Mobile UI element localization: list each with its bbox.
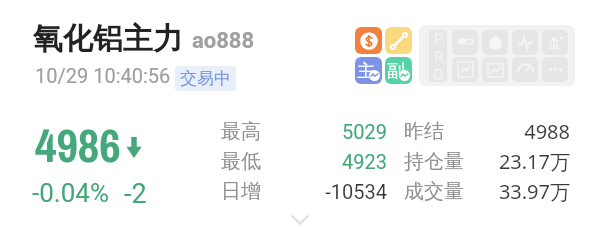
- staticText: 4986: [35, 113, 121, 176]
- staticText: R: [434, 48, 444, 66]
- button[interactable]: Table: [385, 57, 412, 84]
- staticText: 5029: [277, 120, 387, 143]
- button[interactable]: Chart: [452, 57, 478, 82]
- staticText: 日增: [221, 179, 277, 204]
- staticText: 副: [387, 60, 405, 83]
- staticText: 昨结: [404, 119, 464, 144]
- staticText: 10/29 10:40:56: [35, 64, 171, 87]
- staticText: 最低: [221, 149, 277, 174]
- button[interactable]: Bank: [542, 30, 568, 55]
- staticText: O: [433, 66, 444, 82]
- button[interactable]: 交易中: [175, 66, 236, 91]
- button[interactable]: Pulse: [512, 30, 538, 55]
- staticText: 持仓量: [404, 149, 464, 174]
- button[interactable]: Report: [482, 57, 508, 82]
- staticText: 交易中: [180, 68, 231, 89]
- staticText: 33.97万: [464, 178, 570, 205]
- button[interactable]: PRO: [429, 30, 447, 82]
- staticText: 成交量: [404, 179, 464, 204]
- staticText: 4988: [464, 118, 570, 145]
- button[interactable]: Trade: [355, 27, 382, 54]
- staticText: P: [434, 30, 444, 48]
- button[interactable]: Expand: [280, 208, 320, 226]
- staticText: ao888: [192, 28, 255, 54]
- staticText: -0.04%: [32, 178, 109, 208]
- button[interactable]: Cards: [452, 30, 478, 55]
- staticText: 主: [357, 60, 375, 83]
- staticText: 4923: [277, 150, 387, 173]
- staticText: -10534: [277, 180, 387, 203]
- staticText: 氧化铝主力: [33, 20, 183, 58]
- staticText: -2: [124, 178, 147, 210]
- button[interactable]: Gauge: [512, 57, 538, 82]
- button[interactable]: Measure: [385, 27, 412, 54]
- button[interactable]: Money: [482, 30, 508, 55]
- button[interactable]: Main: [355, 57, 382, 84]
- staticText: 23.17万: [464, 148, 570, 175]
- staticText: 最高: [221, 119, 277, 144]
